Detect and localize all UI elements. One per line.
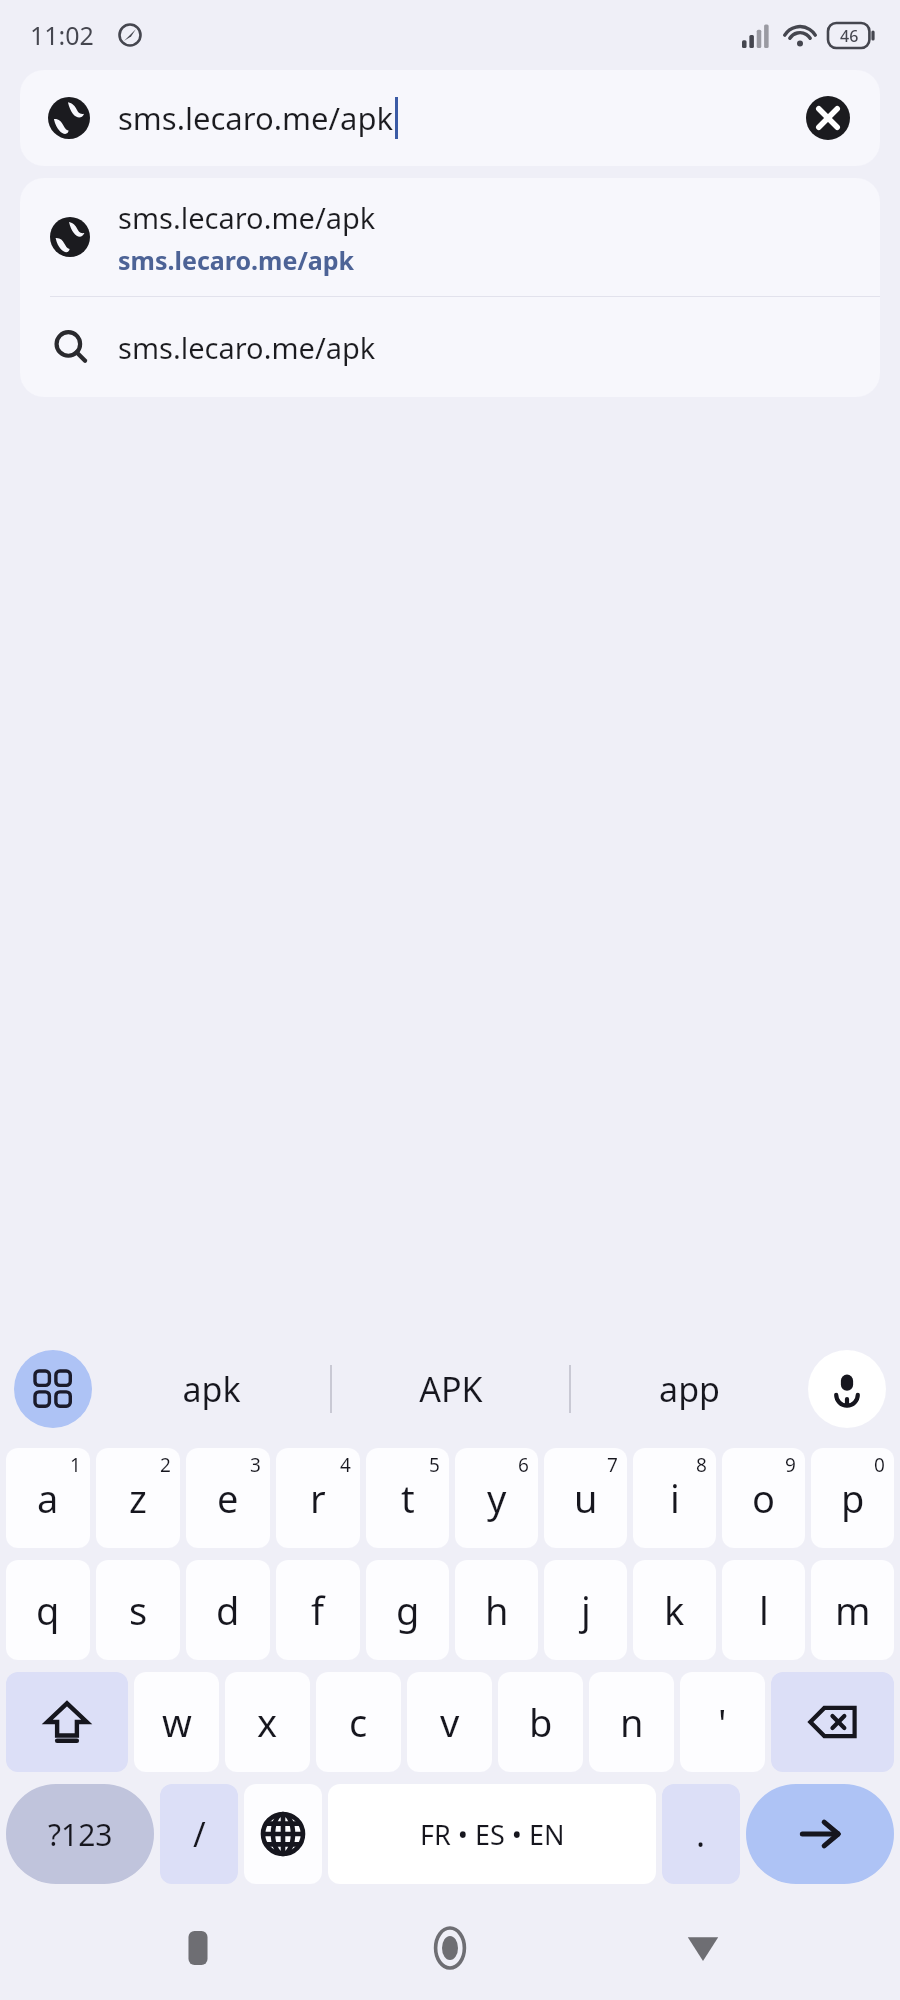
staticText: 7 bbox=[607, 1452, 618, 1478]
staticText: apk bbox=[182, 1366, 241, 1412]
button[interactable]: sms.lecaro.me/apk bbox=[20, 70, 880, 166]
staticText: 46 bbox=[840, 25, 859, 47]
button[interactable]: q bbox=[6, 1560, 90, 1660]
staticText: 1 bbox=[70, 1452, 81, 1478]
staticText: / bbox=[193, 1811, 206, 1857]
button[interactable]: Home bbox=[395, 1896, 505, 2000]
staticText: u bbox=[574, 1472, 598, 1524]
button[interactable]: Back bbox=[648, 1896, 758, 2000]
staticText: sms.lecaro.me/apk bbox=[118, 97, 394, 139]
staticText: z bbox=[129, 1472, 147, 1524]
button[interactable]: ?123 bbox=[6, 1784, 154, 1884]
staticText: 11:02 bbox=[30, 18, 94, 52]
staticText: 5 bbox=[429, 1452, 440, 1478]
button[interactable]: m bbox=[811, 1560, 894, 1660]
staticText: r bbox=[310, 1472, 326, 1524]
staticText: 4 bbox=[340, 1452, 351, 1478]
staticText: q bbox=[36, 1584, 60, 1636]
staticText: k bbox=[664, 1584, 685, 1636]
staticText: p bbox=[841, 1472, 865, 1524]
button[interactable]: z bbox=[96, 1448, 180, 1548]
button[interactable]: b bbox=[498, 1672, 583, 1772]
staticText: w bbox=[162, 1696, 192, 1748]
staticText: v bbox=[440, 1696, 460, 1748]
button[interactable]: t bbox=[366, 1448, 449, 1548]
button[interactable]: Recents bbox=[143, 1896, 253, 2000]
staticText: ' bbox=[718, 1696, 727, 1748]
staticText: c bbox=[349, 1696, 368, 1748]
staticText: l bbox=[759, 1584, 769, 1636]
button[interactable]: l bbox=[722, 1560, 805, 1660]
staticText: sms.lecaro.me/apk bbox=[118, 328, 376, 367]
staticText: f bbox=[311, 1584, 325, 1636]
button[interactable]: w bbox=[134, 1672, 219, 1772]
button[interactable]: x bbox=[225, 1672, 310, 1772]
button[interactable]: / bbox=[160, 1784, 238, 1884]
staticText: sms.lecaro.me/apk bbox=[118, 198, 376, 237]
button[interactable]: j bbox=[544, 1560, 627, 1660]
staticText: 2 bbox=[160, 1452, 171, 1478]
staticText: FR • ES • EN bbox=[420, 1816, 565, 1853]
button[interactable]: Clear bbox=[788, 78, 868, 158]
button[interactable]: Voice input bbox=[808, 1350, 886, 1428]
button[interactable]: k bbox=[633, 1560, 716, 1660]
staticText: e bbox=[217, 1472, 239, 1524]
staticText: x bbox=[257, 1696, 278, 1748]
staticText: 8 bbox=[696, 1452, 707, 1478]
staticText: 3 bbox=[250, 1452, 261, 1478]
button[interactable]: d bbox=[186, 1560, 270, 1660]
staticText: g bbox=[396, 1584, 420, 1636]
button[interactable]: apk bbox=[92, 1336, 330, 1442]
button[interactable]: Shift bbox=[6, 1672, 128, 1772]
staticText: ?123 bbox=[48, 1814, 113, 1855]
button[interactable]: u bbox=[544, 1448, 627, 1548]
button[interactable]: app bbox=[571, 1336, 808, 1442]
button[interactable]: a bbox=[6, 1448, 90, 1548]
staticText: APK bbox=[419, 1366, 483, 1412]
staticText: i bbox=[670, 1472, 680, 1524]
button[interactable]: e bbox=[186, 1448, 270, 1548]
staticText: 9 bbox=[785, 1452, 796, 1478]
staticText: . bbox=[696, 1811, 706, 1857]
staticText: b bbox=[529, 1696, 553, 1748]
staticText: sms.lecaro.me/apk bbox=[118, 243, 355, 277]
button[interactable]: Backspace bbox=[771, 1672, 894, 1772]
button[interactable]: v bbox=[407, 1672, 492, 1772]
staticText: app bbox=[659, 1366, 720, 1412]
button[interactable]: FR • ES • EN bbox=[328, 1784, 656, 1884]
button[interactable]: Change language bbox=[244, 1784, 322, 1884]
staticText: m bbox=[835, 1584, 871, 1636]
staticText: d bbox=[216, 1584, 240, 1636]
staticText: t bbox=[401, 1472, 415, 1524]
button[interactable]: APK bbox=[332, 1336, 569, 1442]
button[interactable]: Go bbox=[746, 1784, 894, 1884]
staticText: n bbox=[620, 1696, 644, 1748]
button[interactable]: i bbox=[633, 1448, 716, 1548]
button[interactable]: h bbox=[455, 1560, 538, 1660]
button[interactable]: y bbox=[455, 1448, 538, 1548]
staticText: o bbox=[752, 1472, 775, 1524]
staticText: a bbox=[37, 1472, 59, 1524]
button[interactable]: o bbox=[722, 1448, 805, 1548]
staticText: 6 bbox=[518, 1452, 529, 1478]
button[interactable]: n bbox=[589, 1672, 674, 1772]
button[interactable]: sms.lecaro.me/apk bbox=[20, 297, 880, 397]
button[interactable]: c bbox=[316, 1672, 401, 1772]
button[interactable]: sms.lecaro.me/apk bbox=[20, 178, 880, 296]
button[interactable]: ' bbox=[680, 1672, 765, 1772]
button[interactable]: p bbox=[811, 1448, 894, 1548]
staticText: s bbox=[129, 1584, 148, 1636]
button[interactable]: g bbox=[366, 1560, 449, 1660]
staticText: y bbox=[487, 1472, 507, 1524]
staticText: h bbox=[485, 1584, 509, 1636]
button[interactable]: f bbox=[276, 1560, 360, 1660]
staticText: j bbox=[581, 1584, 591, 1636]
button[interactable]: r bbox=[276, 1448, 360, 1548]
button[interactable]: Keyboard tools bbox=[14, 1350, 92, 1428]
staticText: 0 bbox=[874, 1452, 885, 1478]
button[interactable]: s bbox=[96, 1560, 180, 1660]
button[interactable]: . bbox=[662, 1784, 740, 1884]
